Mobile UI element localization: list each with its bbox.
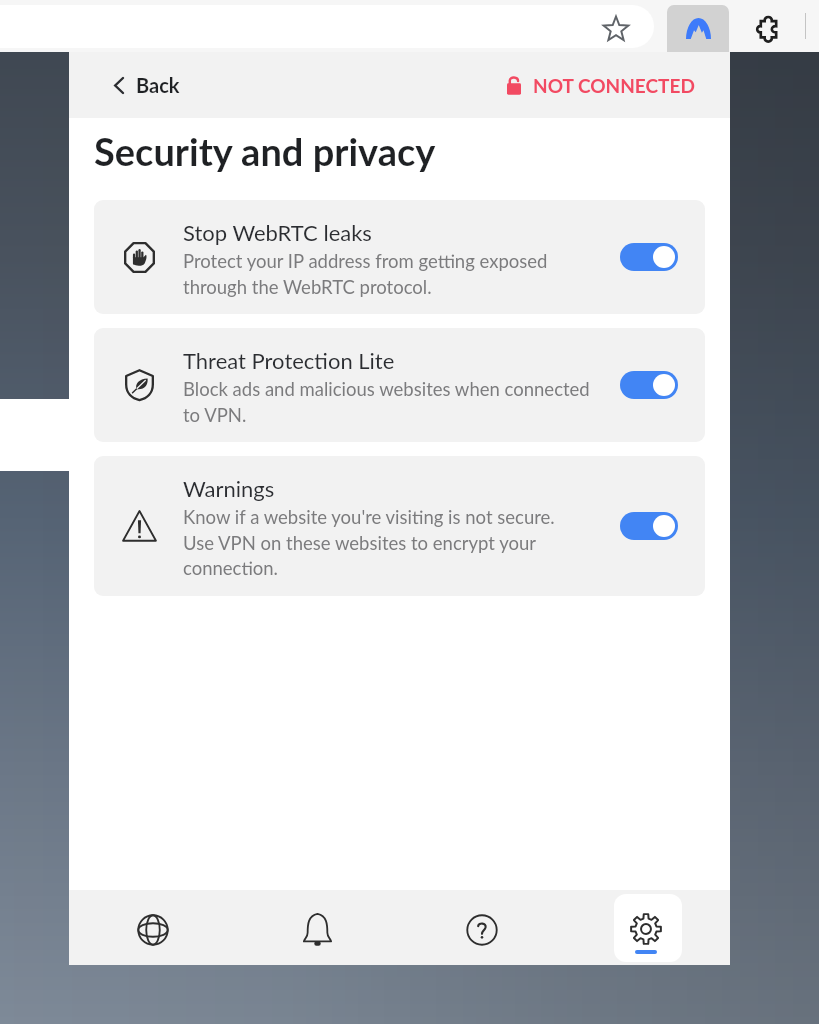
staticText: Back [136,73,180,97]
button[interactable]: Threat Protection Lite [94,328,705,442]
staticText: Protect your IP address from getting exp… [183,250,548,298]
staticText: Stop WebRTC leaks [183,219,372,245]
button[interactable]: Servers [69,890,235,965]
button[interactable]: NordVPN extension [667,5,729,52]
staticText: Know if a website you're visiting is not… [183,506,555,579]
button[interactable]: Notifications [235,890,400,965]
staticText: Warnings [183,475,275,501]
button[interactable]: Warnings [94,456,705,596]
staticText: Block ads and malicious websites when co… [183,378,590,426]
button[interactable]: Toggle setting [620,512,678,540]
button[interactable]: Back [114,73,180,97]
button[interactable]: Extensions [751,12,785,46]
button[interactable]: Help [400,890,565,965]
button[interactable]: Toggle setting [620,371,678,399]
button[interactable]: Toggle setting [620,243,678,271]
button[interactable]: Settings [614,894,682,962]
staticText: Threat Protection Lite [183,347,395,373]
staticText: Security and privacy [94,128,436,174]
button[interactable]: Bookmark this tab [599,12,633,46]
button[interactable]: Stop WebRTC leaks [94,200,705,314]
staticText: NOT CONNECTED [533,74,695,97]
